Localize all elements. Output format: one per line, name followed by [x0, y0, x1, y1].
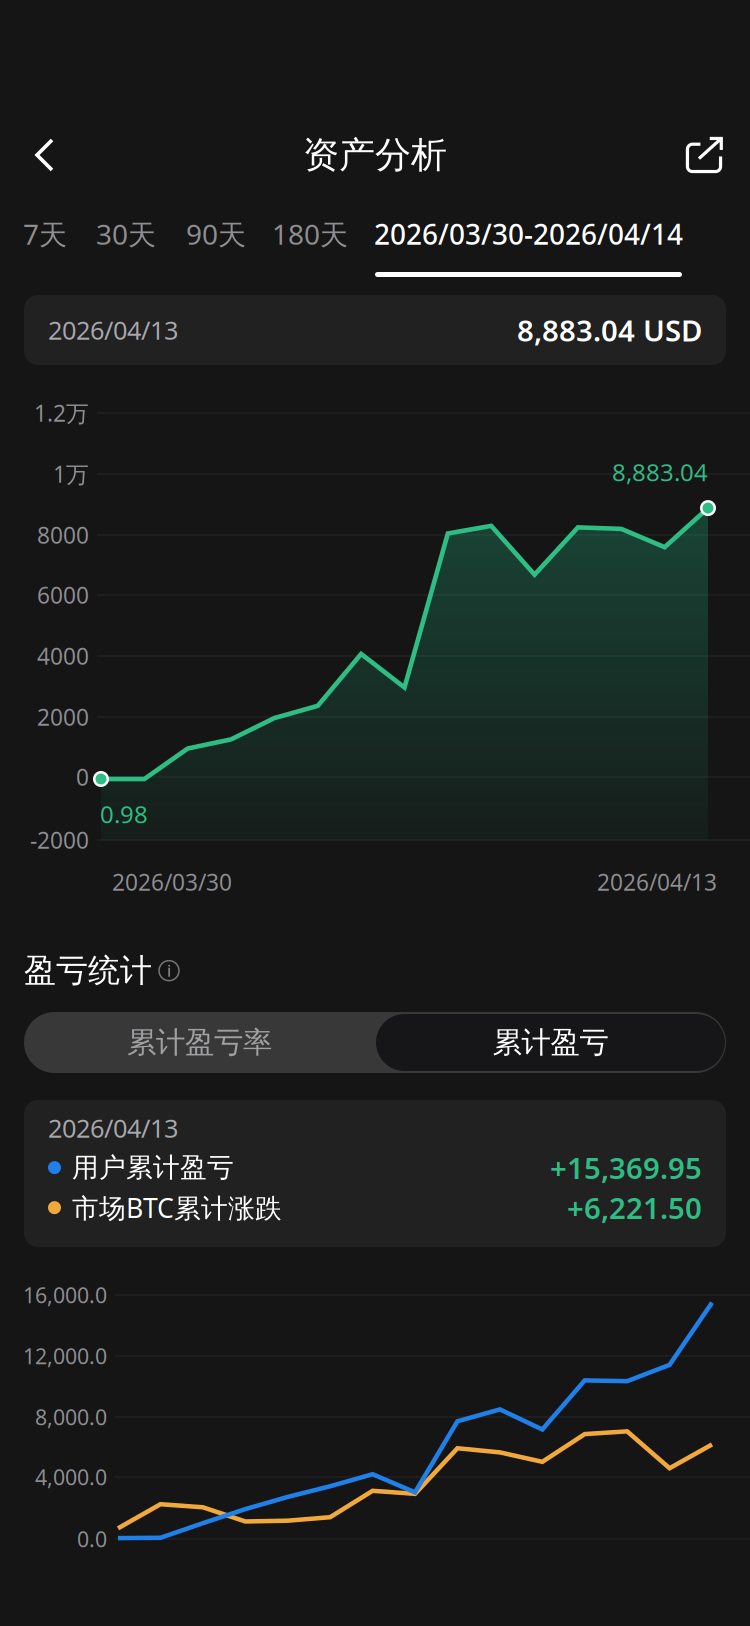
button[interactable]: 2026/03/30-2026/04/14 — [375, 214, 682, 277]
staticText: 30天 — [96, 215, 156, 253]
staticText: 8,883.04 — [612, 456, 708, 488]
staticText: 2026/04/13 — [48, 313, 178, 347]
staticText: 2026/03/30 — [112, 867, 232, 897]
staticText: 市场BTC累计涨跌 — [72, 1190, 282, 1225]
staticText: 0.98 — [100, 798, 148, 830]
button[interactable]: Share — [668, 119, 740, 191]
button[interactable]: 累计盈亏率 — [24, 1012, 375, 1073]
staticText: 盈亏统计 — [24, 951, 152, 990]
staticText: 16,000.0 — [23, 1281, 107, 1309]
button[interactable]: 90天 — [186, 214, 246, 277]
staticText: +15,369.95 — [550, 1148, 702, 1187]
staticText: 累计盈亏率 — [127, 1024, 272, 1060]
staticText: 8000 — [37, 520, 89, 550]
button[interactable]: Back — [8, 119, 80, 191]
staticText: 8,883.04 USD — [517, 310, 702, 349]
staticText: 12,000.0 — [23, 1342, 107, 1370]
staticText: 2026/04/13 — [48, 1111, 178, 1145]
button[interactable]: 30天 — [96, 214, 156, 277]
staticText: 2026/03/30-2026/04/14 — [374, 215, 683, 253]
staticText: 资产分析 — [303, 133, 447, 177]
staticText: 0.0 — [77, 1525, 107, 1553]
staticText: 2000 — [37, 702, 89, 732]
staticText: 90天 — [186, 215, 246, 253]
staticText: 0 — [76, 762, 89, 792]
staticText: 累计盈亏 — [492, 1024, 608, 1060]
staticText: 7天 — [23, 215, 67, 253]
staticText: 用户累计盈亏 — [72, 1151, 234, 1184]
staticText: 4,000.0 — [35, 1463, 107, 1491]
staticText: 1.2万 — [34, 398, 89, 428]
staticText: -2000 — [30, 825, 89, 855]
button[interactable]: 7天 — [24, 214, 66, 277]
staticText: 4000 — [37, 641, 89, 671]
staticText: i — [167, 960, 171, 981]
button[interactable]: 累计盈亏 — [375, 1012, 726, 1073]
staticText: +6,221.50 — [567, 1188, 702, 1227]
staticText: 180天 — [272, 215, 348, 253]
staticText: 1万 — [53, 459, 89, 489]
staticText: 6000 — [37, 580, 89, 610]
staticText: 8,000.0 — [35, 1403, 107, 1431]
staticText: 2026/04/13 — [597, 867, 717, 897]
button[interactable]: 180天 — [272, 214, 348, 277]
